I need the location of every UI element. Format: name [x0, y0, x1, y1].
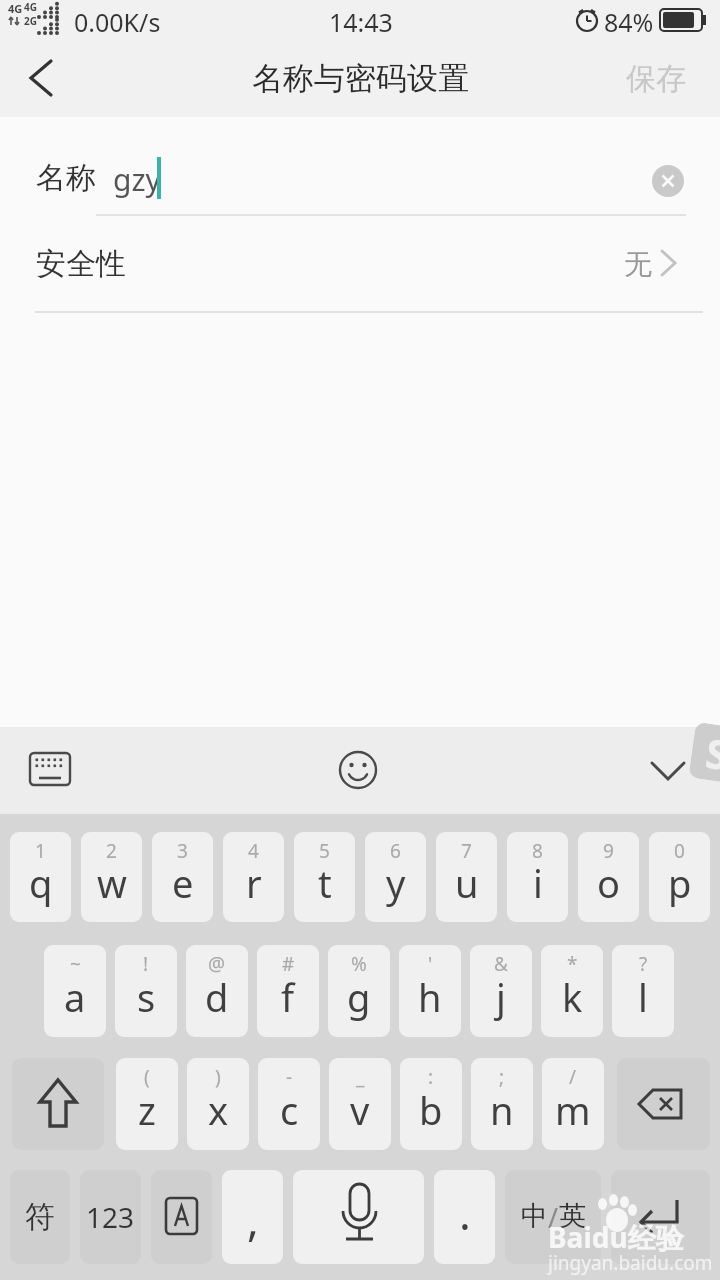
button[interactable]: [636, 751, 700, 791]
staticText: ~: [70, 951, 81, 977]
staticText: ?: [639, 951, 648, 977]
button[interactable]: 符: [10, 1170, 70, 1264]
button[interactable]: f: [257, 945, 319, 1037]
staticText: 2: [106, 838, 117, 864]
button[interactable]: h: [399, 945, 461, 1037]
button[interactable]: .: [434, 1170, 495, 1264]
staticText: 84%: [604, 5, 654, 39]
staticText: 123: [86, 1198, 135, 1236]
staticText: a: [64, 971, 86, 1023]
button[interactable]: x: [187, 1058, 249, 1150]
staticText: k: [562, 971, 583, 1023]
staticText: 4: [248, 838, 259, 864]
staticText: n: [490, 1084, 514, 1136]
button[interactable]: a: [44, 945, 106, 1037]
staticText: @: [208, 951, 226, 977]
staticText: f: [281, 971, 295, 1023]
button[interactable]: o: [578, 832, 639, 922]
staticText: z: [138, 1084, 156, 1136]
button[interactable]: [611, 1170, 710, 1264]
staticText: !: [143, 951, 149, 977]
staticText: ,: [247, 1189, 259, 1249]
button[interactable]: q: [10, 832, 71, 922]
staticText: .: [459, 1183, 471, 1243]
button[interactable]: [12, 1058, 104, 1150]
staticText: 英: [559, 1199, 586, 1233]
staticText: p: [668, 857, 692, 909]
staticText: 4G: [24, 0, 37, 14]
button[interactable]: n: [471, 1058, 533, 1150]
staticText: d: [205, 971, 229, 1023]
button[interactable]: z: [116, 1058, 178, 1150]
staticText: v: [350, 1084, 370, 1136]
staticText: j: [496, 971, 506, 1023]
staticText: _: [356, 1064, 365, 1090]
staticText: h: [418, 971, 442, 1023]
button[interactable]: j: [470, 945, 532, 1037]
button[interactable]: 中: [505, 1170, 601, 1264]
staticText: Baidu经验: [548, 1218, 684, 1256]
staticText: S: [702, 725, 720, 781]
button[interactable]: y: [365, 832, 426, 922]
staticText: 0.00K/s: [74, 5, 161, 39]
staticText: 1: [35, 838, 46, 864]
button[interactable]: ,: [222, 1170, 283, 1264]
staticText: t: [318, 857, 332, 909]
staticText: w: [97, 857, 127, 909]
staticText: q: [29, 857, 53, 909]
button[interactable]: 安全性: [0, 215, 720, 311]
staticText: %: [351, 951, 367, 977]
staticText: -: [286, 1064, 293, 1090]
staticText: 2G: [24, 14, 37, 28]
button[interactable]: r: [223, 832, 284, 922]
staticText: 安全性: [36, 245, 126, 283]
button[interactable]: e: [152, 832, 213, 922]
button[interactable]: v: [329, 1058, 391, 1150]
staticText: l: [638, 971, 648, 1023]
button[interactable]: [22, 745, 78, 795]
button[interactable]: [293, 1170, 424, 1264]
staticText: /: [569, 1064, 577, 1090]
staticText: o: [597, 857, 620, 909]
staticText: 4G: [8, 1, 23, 16]
staticText: u: [455, 857, 479, 909]
staticText: 5: [319, 838, 330, 864]
staticText: 3: [177, 838, 188, 864]
button[interactable]: 123: [80, 1170, 141, 1264]
button[interactable]: b: [400, 1058, 462, 1150]
staticText: 中: [521, 1199, 548, 1233]
staticText: jingyan.baidu.com: [548, 1250, 713, 1276]
button[interactable]: l: [612, 945, 674, 1037]
button[interactable]: w: [81, 832, 142, 922]
staticText: &: [494, 951, 508, 977]
button[interactable]: i: [507, 832, 568, 922]
button[interactable]: g: [328, 945, 390, 1037]
button[interactable]: p: [649, 832, 710, 922]
staticText: /: [548, 1199, 559, 1236]
button[interactable]: [617, 1058, 710, 1150]
staticText: e: [172, 857, 194, 909]
button[interactable]: [18, 57, 62, 101]
staticText: c: [280, 1084, 299, 1136]
staticText: 8: [532, 838, 543, 864]
button[interactable]: d: [186, 945, 248, 1037]
button[interactable]: t: [294, 832, 355, 922]
staticText: 9: [603, 838, 614, 864]
button[interactable]: k: [541, 945, 603, 1037]
button[interactable]: [330, 745, 386, 795]
button[interactable]: [652, 165, 684, 197]
staticText: 无: [624, 247, 652, 282]
button[interactable]: c: [258, 1058, 320, 1150]
staticText: i: [533, 857, 543, 909]
button[interactable]: m: [542, 1058, 604, 1150]
staticText: ;: [499, 1064, 505, 1090]
button[interactable]: 保存: [626, 60, 686, 98]
staticText: 名称与密码设置: [252, 59, 469, 98]
staticText: 保存: [626, 60, 686, 98]
button[interactable]: u: [436, 832, 497, 922]
staticText: ': [428, 951, 433, 977]
button[interactable]: 名称: [0, 117, 720, 215]
button[interactable]: [151, 1170, 212, 1264]
button[interactable]: s: [115, 945, 177, 1037]
staticText: g: [347, 971, 371, 1023]
